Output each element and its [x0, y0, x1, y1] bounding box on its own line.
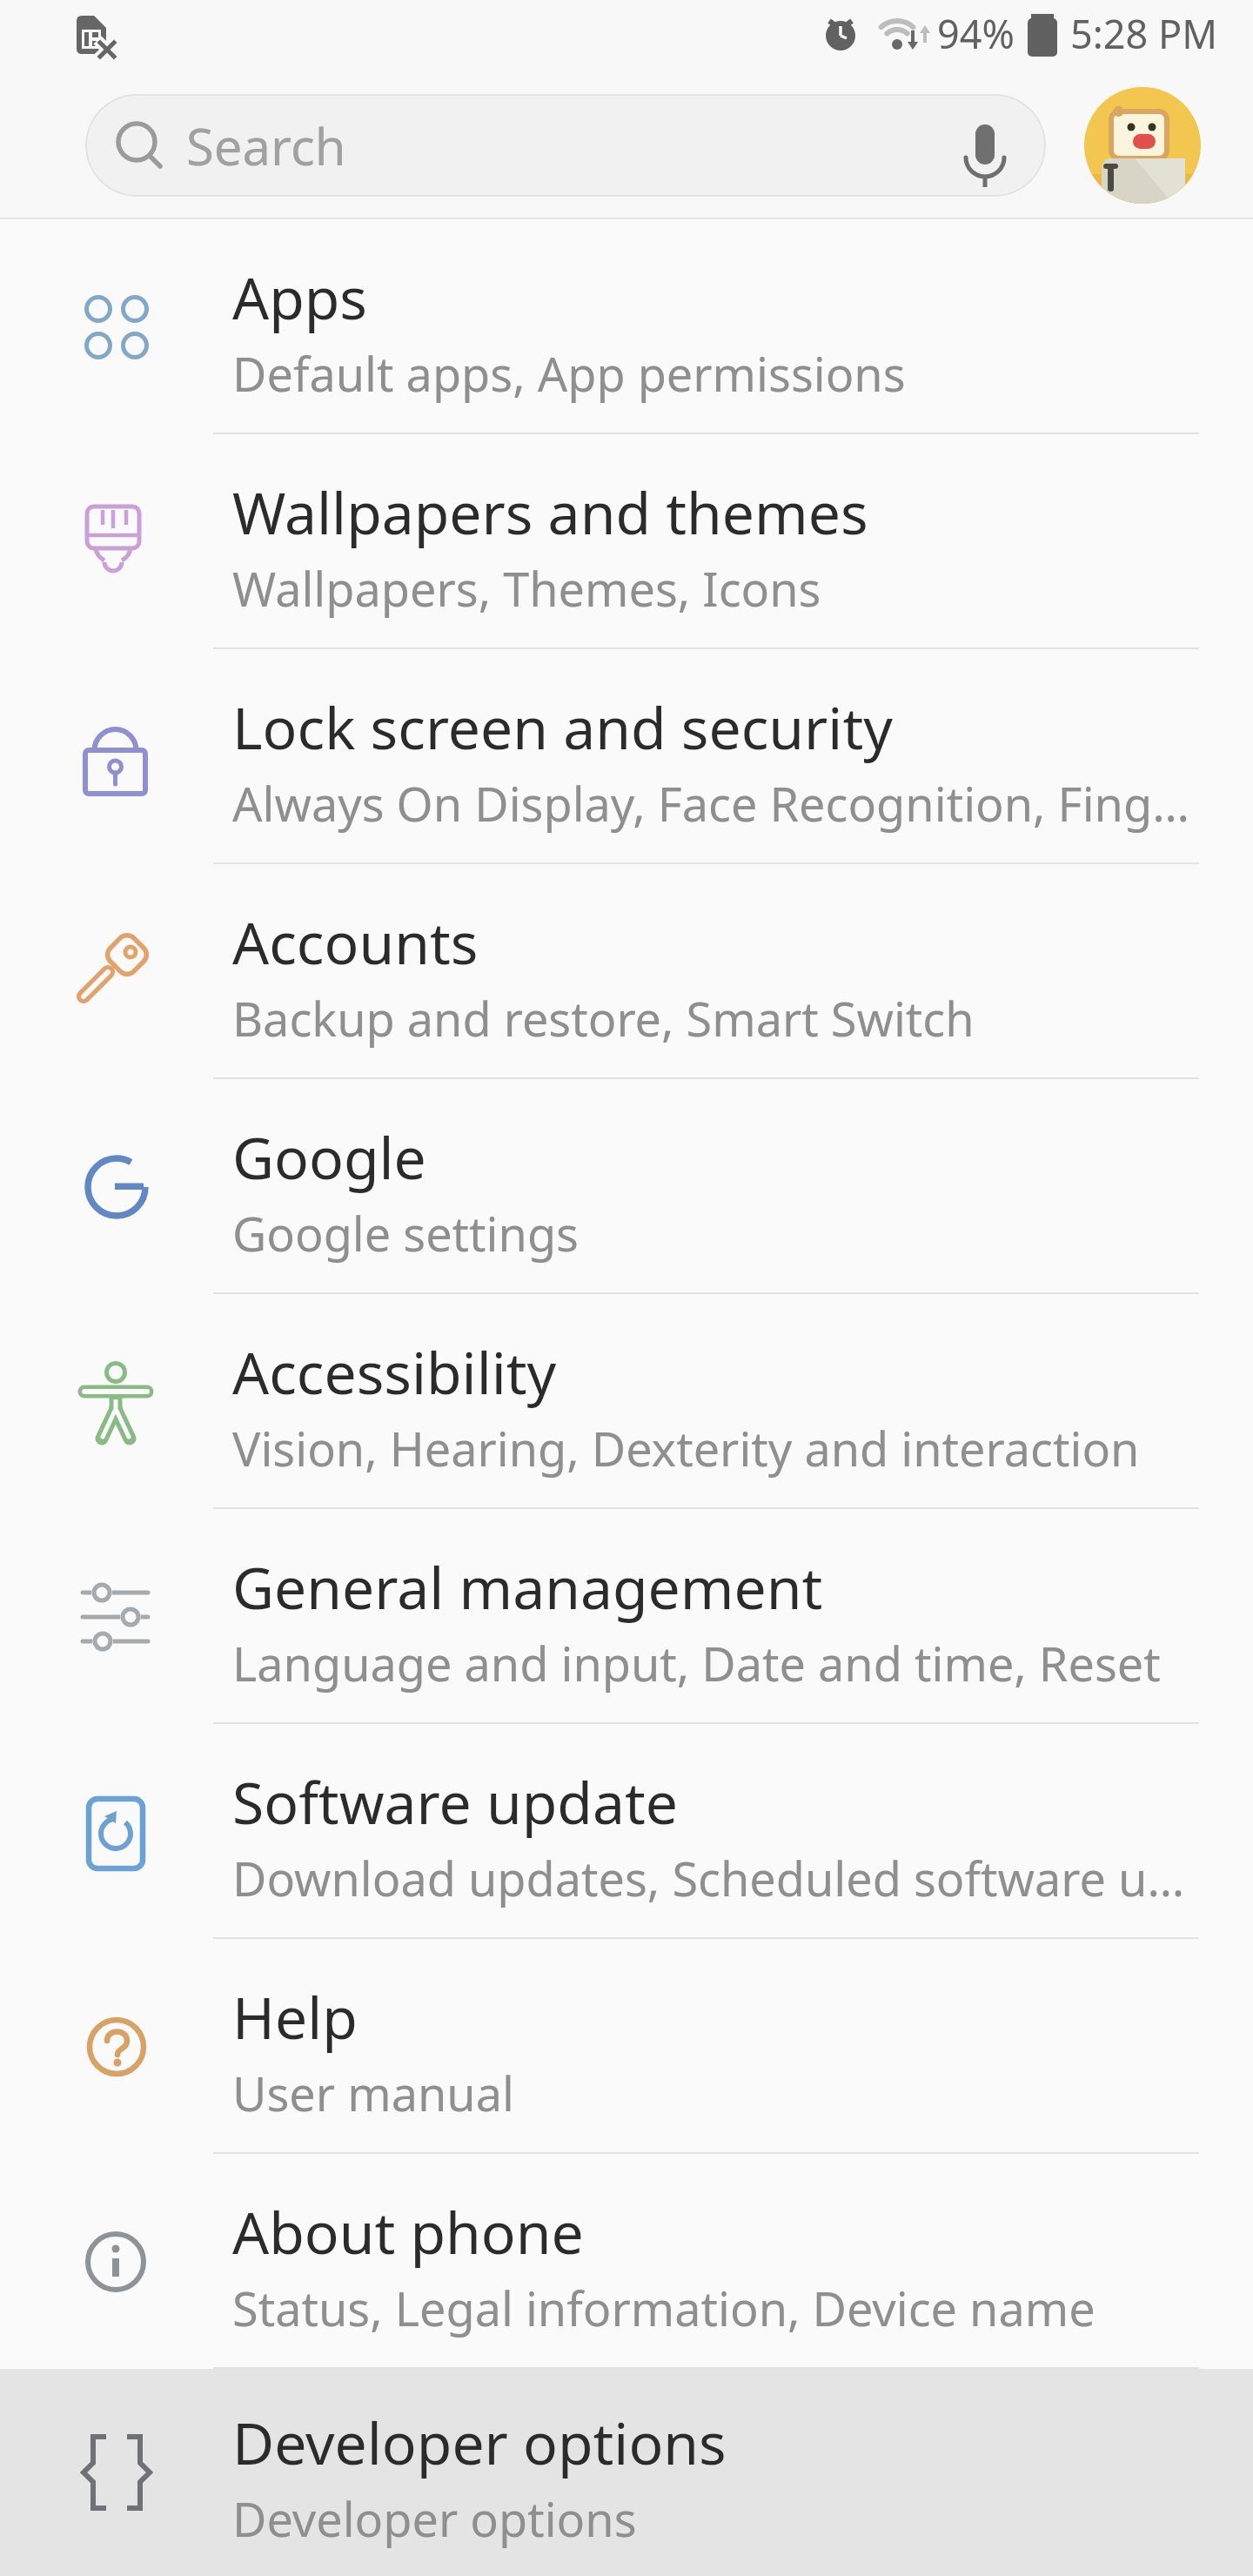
staticText: Language and input, Date and time, Reset — [232, 1631, 1161, 1695]
staticText: Developer options — [232, 2486, 637, 2551]
button[interactable]: Accessibility — [0, 1294, 1253, 1509]
staticText: Accounts — [232, 902, 479, 981]
button[interactable]: Google — [0, 1079, 1253, 1294]
button[interactable]: About phone — [0, 2154, 1253, 2369]
staticText: Apps — [232, 258, 367, 336]
staticText: Lock screen and security — [232, 688, 893, 766]
staticText: Vision, Hearing, Dexterity and interacti… — [232, 1416, 1140, 1480]
button[interactable]: Help — [0, 1939, 1253, 2154]
staticText: Wallpapers and themes — [232, 473, 868, 551]
button[interactable]: Search — [85, 94, 1046, 197]
staticText: Download updates, Scheduled software upd… — [232, 1846, 1199, 1910]
staticText: General management — [232, 1547, 823, 1626]
staticText: User manual — [232, 2061, 514, 2125]
staticText: Search — [186, 111, 346, 180]
staticText: Developer options — [232, 2403, 727, 2481]
button[interactable]: Developer options — [0, 2369, 1253, 2576]
staticText: Help — [232, 1977, 358, 2056]
button[interactable]: Wallpapers and themes — [0, 434, 1253, 649]
staticText: Google settings — [232, 1201, 579, 1265]
button[interactable]: Apps — [0, 219, 1253, 434]
button[interactable]: Lock screen and security — [0, 649, 1253, 864]
staticText: Accessibility — [232, 1332, 557, 1411]
staticText: Default apps, App permissions — [232, 341, 906, 406]
staticText: Software update — [232, 1762, 678, 1841]
staticText: About phone — [232, 2192, 584, 2271]
button[interactable]: General management — [0, 1509, 1253, 1724]
staticText: Google — [232, 1117, 426, 1196]
button[interactable]: Accounts — [0, 864, 1253, 1079]
button[interactable]: Software update — [0, 1724, 1253, 1939]
staticText: 5:28 PM — [1070, 7, 1218, 60]
staticText: Status, Legal information, Device name — [232, 2276, 1096, 2340]
staticText: Always On Display, Face Recognition, Fin… — [232, 771, 1199, 835]
staticText: 94% — [937, 7, 1015, 60]
button[interactable] — [1084, 87, 1201, 204]
staticText: Wallpapers, Themes, Icons — [232, 556, 821, 621]
staticText: Backup and restore, Smart Switch — [232, 986, 975, 1050]
